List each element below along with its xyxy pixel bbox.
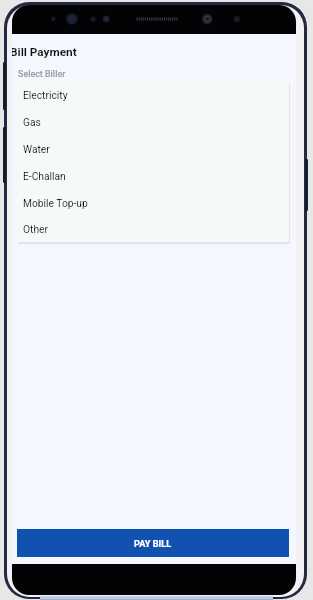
button[interactable]: Other bbox=[17, 217, 289, 242]
button[interactable]: Mobile Top-up bbox=[17, 190, 289, 217]
staticText: E-Challan bbox=[23, 170, 66, 182]
other: Volume down bbox=[3, 127, 6, 183]
staticText: Other bbox=[23, 223, 48, 235]
button[interactable]: Water bbox=[17, 136, 289, 163]
staticText: Mobile Top-up bbox=[23, 197, 88, 209]
staticText: Water bbox=[23, 143, 50, 155]
staticText: Bill Payment bbox=[12, 45, 77, 59]
button[interactable]: PAY BILL bbox=[17, 529, 289, 557]
staticText: Electricity bbox=[23, 89, 68, 101]
button[interactable]: E-Challan bbox=[17, 163, 289, 190]
button[interactable]: Electricity bbox=[17, 82, 289, 109]
other: Volume up bbox=[3, 62, 6, 110]
staticText: PAY BILL bbox=[134, 538, 172, 549]
staticText: Gas bbox=[23, 116, 41, 128]
staticText: Select Biller bbox=[18, 69, 66, 79]
other: Power bbox=[305, 159, 308, 211]
button[interactable]: Gas bbox=[17, 109, 289, 136]
